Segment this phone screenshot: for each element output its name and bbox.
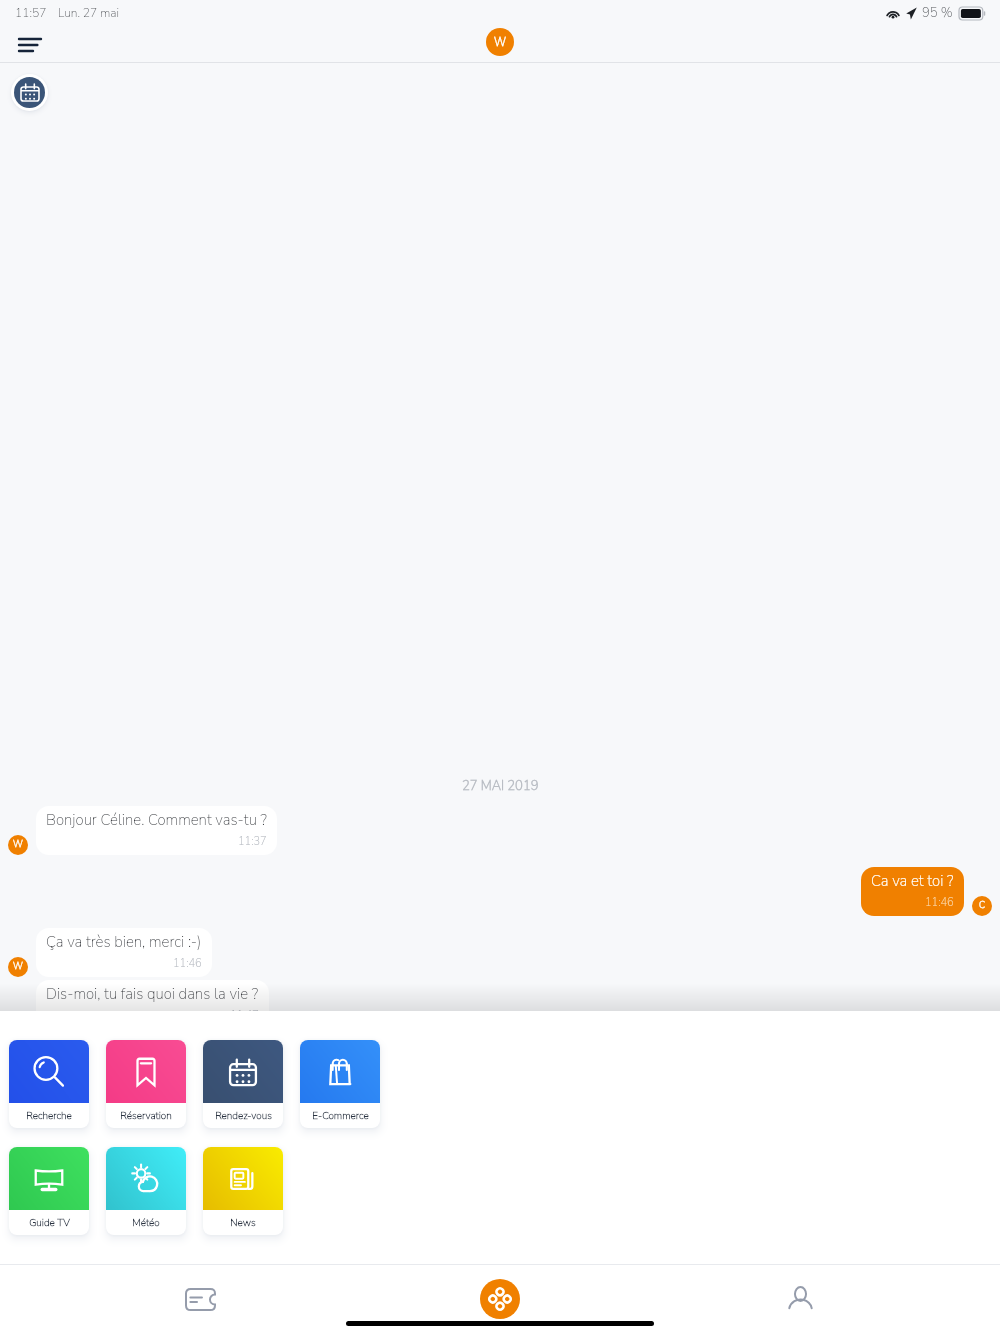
button[interactable]: Guide TV — [9, 1147, 89, 1235]
staticText: Réservation — [120, 1109, 172, 1123]
button[interactable]: Recherche — [9, 1040, 89, 1128]
staticText: Dis-moi, tu fais quoi dans la vie ? — [46, 984, 259, 1004]
button[interactable]: Menu — [12, 27, 48, 63]
staticText: 27 MAI 2019 — [462, 777, 539, 795]
button[interactable]: Profile — [776, 1275, 824, 1323]
button[interactable]: News — [203, 1147, 283, 1235]
button[interactable]: Réservation — [106, 1040, 186, 1128]
staticText: Rendez-vous — [215, 1109, 272, 1123]
staticText: C — [979, 899, 986, 911]
staticText: W — [13, 838, 23, 850]
button[interactable]: Météo — [106, 1147, 186, 1235]
staticText: Bonjour Céline. Comment vas-tu ? — [46, 810, 267, 830]
button[interactable]: Apps — [476, 1275, 524, 1323]
staticText: 11:46 — [173, 956, 202, 971]
staticText: 11:47 — [230, 1008, 259, 1023]
button[interactable]: Calendar — [14, 77, 45, 108]
staticText: 11:57 — [15, 5, 47, 21]
staticText: W — [13, 960, 23, 972]
staticText: Ça va très bien, merci :-) — [46, 932, 202, 952]
button[interactable]: E-Commerce — [300, 1040, 380, 1128]
staticText: Météo — [132, 1216, 160, 1230]
staticText: Ca va et toi ? — [871, 871, 954, 891]
staticText: News — [230, 1216, 256, 1230]
staticText: 95 % — [922, 4, 953, 22]
staticText: Guide TV — [29, 1216, 70, 1230]
staticText: 11:46 — [925, 895, 954, 910]
button[interactable]: Tickets — [176, 1275, 224, 1323]
button[interactable]: W — [486, 28, 514, 56]
staticText: Recherche — [26, 1109, 72, 1123]
staticText: W — [494, 35, 507, 50]
staticText: 11:37 — [238, 834, 267, 849]
button[interactable]: Rendez-vous — [203, 1040, 283, 1128]
staticText: Lun. 27 mai — [58, 5, 119, 21]
staticText: E-Commerce — [312, 1109, 369, 1123]
